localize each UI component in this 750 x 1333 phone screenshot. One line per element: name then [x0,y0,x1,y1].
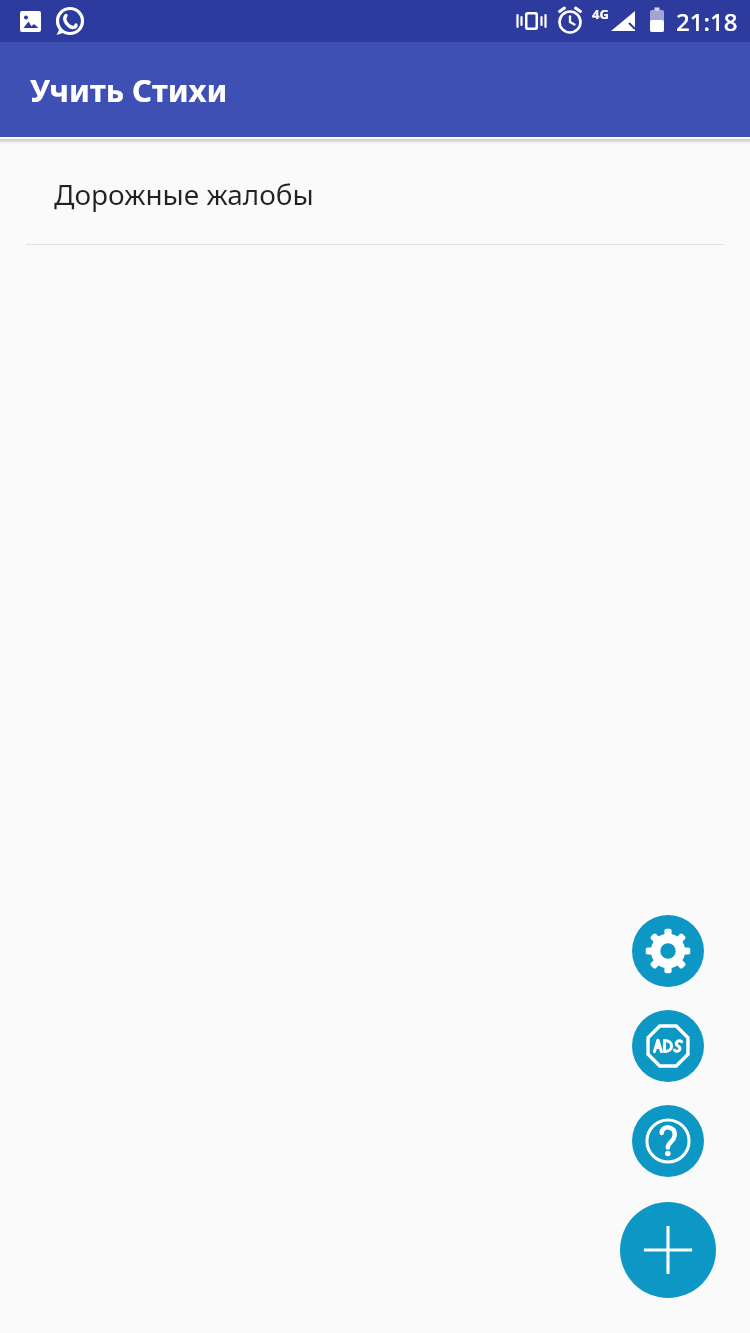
staticText: 4G [592,5,609,23]
staticText: Учить Стихи [30,69,228,111]
button[interactable]: Add poem [620,1202,716,1298]
button[interactable]: Help [632,1105,704,1177]
button[interactable]: Дорожные жалобы [0,144,750,245]
staticText: 21:18 [676,5,738,38]
staticText: Дорожные жалобы [54,175,314,213]
button[interactable]: Remove ads [632,1010,704,1082]
button[interactable]: Settings [632,915,704,987]
